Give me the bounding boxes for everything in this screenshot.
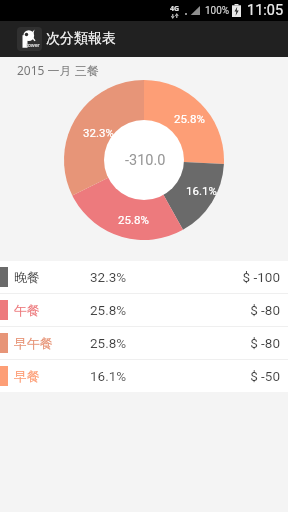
staticText: 32.3% xyxy=(83,126,114,139)
staticText: 16.1% xyxy=(90,368,202,384)
staticText: 2015 一月 三餐 xyxy=(17,62,99,78)
staticText: 4G xyxy=(170,4,180,14)
staticText: $ -80 xyxy=(202,335,280,351)
staticText: 25.8% xyxy=(118,213,149,226)
staticText: 25.8% xyxy=(90,335,202,351)
staticText: 次分類報表 xyxy=(46,30,116,48)
staticText: 25.8% xyxy=(90,302,202,318)
staticText: 16.1% xyxy=(186,184,217,197)
staticText: -310.0 xyxy=(125,152,166,169)
staticText: 早餐 xyxy=(14,368,90,384)
button[interactable]: 早餐 xyxy=(0,360,288,392)
staticText: 32.3% xyxy=(90,269,202,285)
staticText: 11:05 xyxy=(247,2,284,19)
staticText: $ -50 xyxy=(202,368,280,384)
staticText: tower xyxy=(26,42,40,49)
button[interactable]: App logo xyxy=(17,27,42,51)
staticText: 晚餐 xyxy=(14,269,90,285)
staticText: 25.8% xyxy=(174,112,205,125)
staticText: 午餐 xyxy=(14,302,90,318)
staticText: 早午餐 xyxy=(14,335,90,351)
button[interactable]: 晚餐 xyxy=(0,261,288,293)
button[interactable]: 早午餐 xyxy=(0,327,288,359)
button[interactable]: 午餐 xyxy=(0,294,288,326)
staticText: $ -100 xyxy=(202,269,280,285)
staticText: $ -80 xyxy=(202,302,280,318)
staticText: 100% xyxy=(205,5,230,17)
